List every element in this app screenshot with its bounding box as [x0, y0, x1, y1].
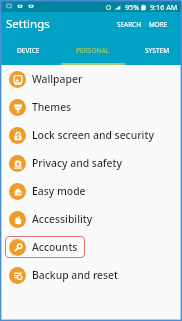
button[interactable]: Themes [1, 93, 181, 121]
staticText: Backup and reset [32, 268, 119, 282]
staticText: Privacy and safety [32, 156, 122, 170]
staticText: Themes [32, 100, 72, 114]
staticText: SEARCH [117, 20, 141, 29]
staticText: Accessibility [32, 212, 93, 226]
staticText: Lock screen and security [32, 128, 154, 142]
staticText: 9:16 AM [150, 2, 178, 12]
staticText: SYSTEM [145, 46, 170, 55]
staticText: Wallpaper [32, 72, 83, 86]
staticText: Accounts [32, 240, 78, 254]
button[interactable]: Accessibility [1, 205, 181, 233]
button[interactable]: Easy mode [1, 177, 181, 205]
button[interactable]: SEARCH [113, 15, 145, 34]
button[interactable]: DEVICE [0, 36, 61, 65]
button[interactable]: MORE [145, 15, 181, 34]
button[interactable]: SYSTEM [125, 36, 182, 65]
button[interactable]: PERSONAL [61, 36, 125, 65]
button[interactable]: Accounts [1, 233, 181, 261]
button[interactable]: Privacy and safety [1, 149, 181, 177]
button[interactable]: Wallpaper [1, 65, 181, 93]
button[interactable]: Backup and reset [1, 261, 181, 289]
staticText: PERSONAL [76, 46, 110, 55]
staticText: MORE [149, 20, 168, 29]
button[interactable]: Lock screen and security [1, 121, 181, 149]
staticText: Easy mode [32, 184, 86, 198]
staticText: DEVICE [17, 46, 40, 55]
staticText: 95% [125, 2, 140, 12]
staticText: Settings [6, 16, 50, 32]
